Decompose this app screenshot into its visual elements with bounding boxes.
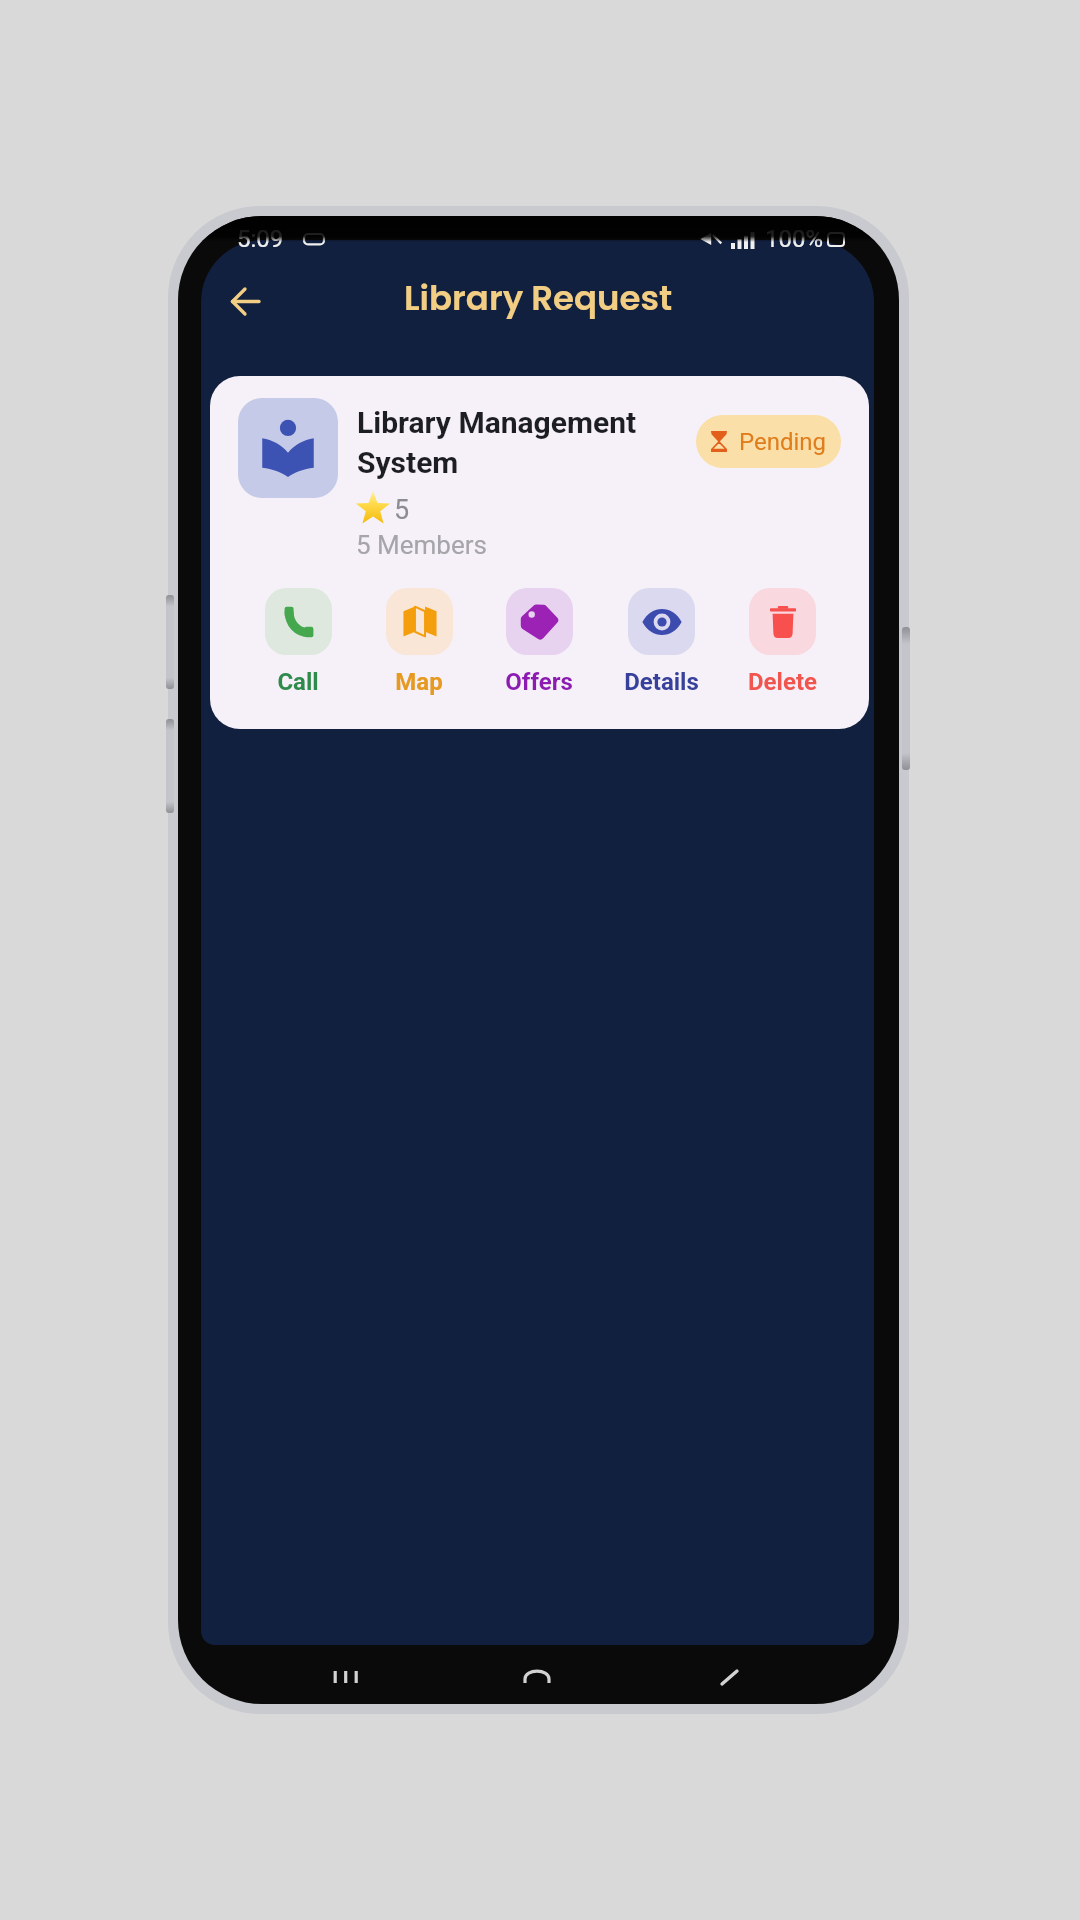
- staticText: Map: [395, 668, 443, 696]
- staticText: 5: [394, 494, 410, 526]
- button[interactable]: Recent apps: [323, 1646, 369, 1692]
- staticText: 5:09: [237, 225, 284, 253]
- staticText: 5 Members: [356, 530, 487, 560]
- staticText: Library Management System: [357, 405, 657, 481]
- button[interactable]: Pending: [696, 415, 841, 468]
- button[interactable]: Home: [514, 1646, 560, 1692]
- staticText: Pending: [739, 428, 827, 456]
- staticText: Offers: [505, 668, 573, 696]
- staticText: 100%: [765, 225, 824, 253]
- button[interactable]: Back: [706, 1646, 752, 1692]
- staticText: Details: [624, 668, 699, 696]
- button[interactable]: Call: [248, 588, 348, 696]
- button[interactable]: Delete: [732, 588, 832, 696]
- button[interactable]: Library Management System: [210, 376, 869, 729]
- button[interactable]: Back: [217, 273, 273, 329]
- staticText: Library Request: [404, 274, 673, 322]
- button[interactable]: Map: [369, 588, 469, 696]
- button[interactable]: Details: [611, 588, 711, 696]
- staticText: Delete: [748, 668, 817, 696]
- staticText: Call: [277, 668, 319, 696]
- button[interactable]: Offers: [489, 588, 589, 696]
